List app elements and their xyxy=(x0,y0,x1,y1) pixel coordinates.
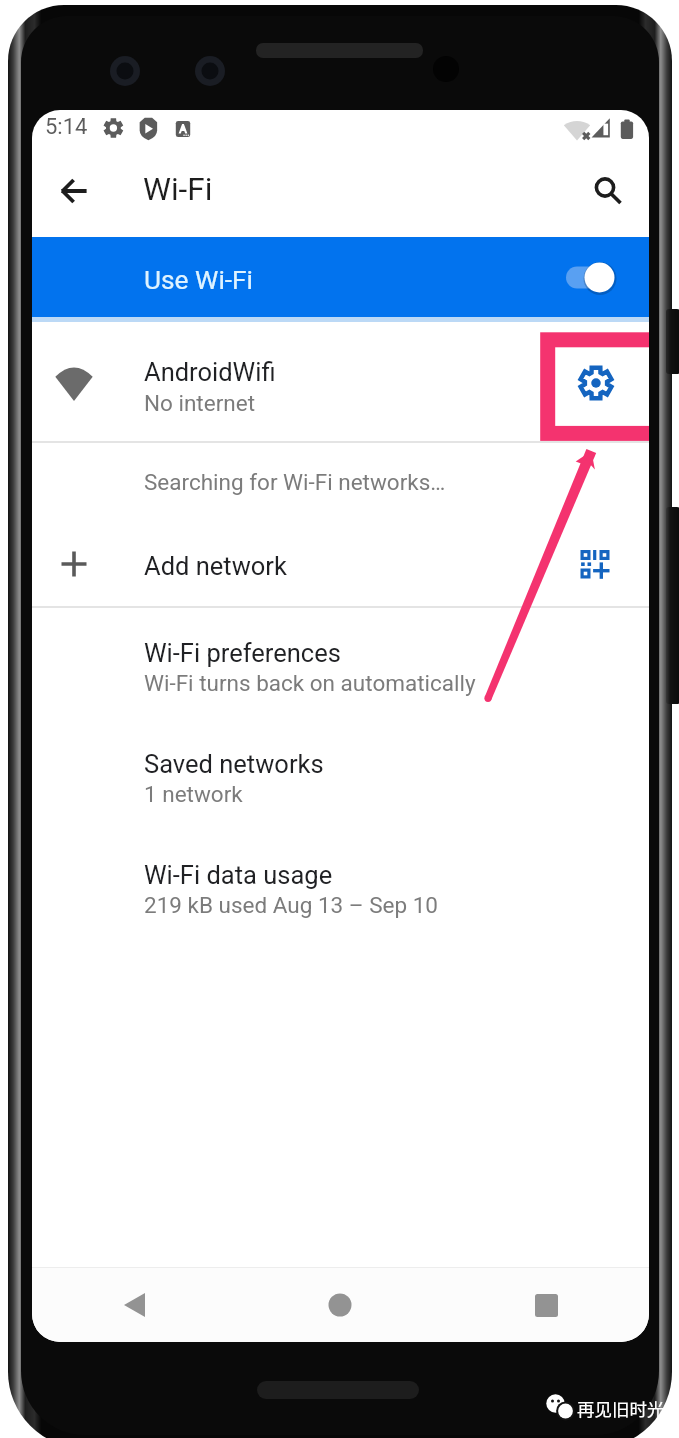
button[interactable]: Home xyxy=(237,1268,443,1342)
button[interactable]: Recent apps xyxy=(443,1268,649,1342)
staticText: 1 network xyxy=(144,781,243,807)
staticText: Searching for Wi-Fi networks… xyxy=(144,469,446,495)
staticText: AndroidWifi xyxy=(144,357,276,387)
button[interactable]: Back xyxy=(50,167,98,215)
button[interactable]: Scan QR code to add network xyxy=(571,540,619,588)
button[interactable]: Search xyxy=(581,165,629,213)
button[interactable]: Use Wi-Fi xyxy=(32,237,649,317)
staticText: Add network xyxy=(144,551,287,581)
button[interactable]: AndroidWifi xyxy=(32,322,649,442)
staticText: 5:14 xyxy=(45,114,88,140)
button[interactable]: Wi-Fi data usage xyxy=(32,835,649,945)
staticText: Use Wi-Fi xyxy=(144,265,254,296)
staticText: Wi-Fi data usage xyxy=(144,860,333,890)
staticText: 再见旧时光 xyxy=(577,1396,665,1421)
button[interactable]: Network settings xyxy=(572,361,620,409)
staticText: No internet xyxy=(144,390,255,416)
staticText: Wi-Fi turns back on automatically xyxy=(144,670,476,696)
button[interactable]: Add network xyxy=(32,523,649,607)
staticText: Saved networks xyxy=(144,749,324,779)
button[interactable]: Saved networks xyxy=(32,724,649,834)
staticText: Wi-Fi preferences xyxy=(144,638,341,668)
button[interactable]: Wi-Fi preferences xyxy=(32,613,649,723)
button[interactable]: Back xyxy=(32,1268,237,1342)
staticText: 219 kB used Aug 13 – Sep 10 xyxy=(144,892,438,918)
staticText: Wi-Fi xyxy=(143,171,213,208)
